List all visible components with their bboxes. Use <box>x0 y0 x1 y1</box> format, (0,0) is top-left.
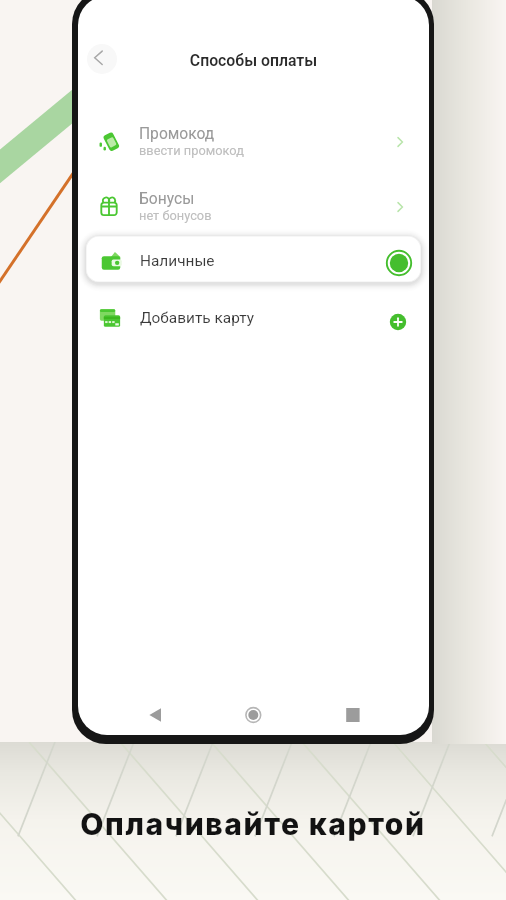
button[interactable]: Промокод <box>78 118 429 166</box>
staticText: Способы оплаты <box>78 51 429 70</box>
button[interactable]: Наличные <box>86 236 421 282</box>
staticText: Добавить карту <box>140 309 254 327</box>
staticText: ввести промокод <box>139 143 244 158</box>
button[interactable]: Назад <box>87 44 117 74</box>
staticText: Оплачивайте картой <box>0 806 506 842</box>
staticText: Промокод <box>139 125 215 143</box>
staticText: нет бонусов <box>139 208 212 223</box>
staticText: Наличные <box>140 252 215 270</box>
button[interactable]: Добавить карту <box>78 295 429 341</box>
staticText: Бонусы <box>139 190 195 208</box>
button[interactable]: Бонусы <box>78 183 429 231</box>
